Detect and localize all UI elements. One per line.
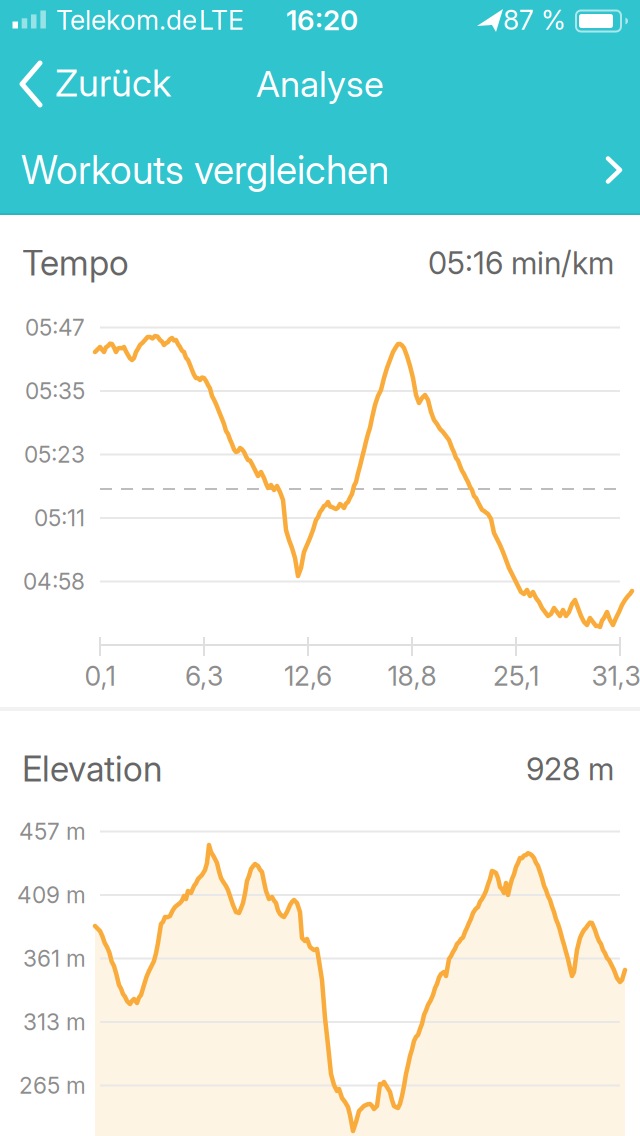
staticText: Analyse xyxy=(256,62,384,106)
staticText: 05:11 xyxy=(34,504,85,532)
staticText: 18,8 xyxy=(387,660,436,692)
staticText: 04:58 xyxy=(23,568,85,595)
staticText: 05:16 min/km xyxy=(428,244,614,281)
staticText: 361 m xyxy=(23,945,86,972)
staticText: Zurück xyxy=(55,60,171,106)
staticText: 25,1 xyxy=(493,660,539,692)
staticText: 16:20 xyxy=(286,3,358,37)
staticText: Tempo xyxy=(22,242,129,284)
button[interactable]: Workouts vergleichen xyxy=(0,126,640,214)
staticText: 05:35 xyxy=(25,377,85,405)
staticText: Elevation xyxy=(22,748,162,790)
staticText: 87 % xyxy=(503,4,566,36)
staticText: LTE xyxy=(199,4,244,36)
staticText: 12,6 xyxy=(284,660,332,692)
staticText: 05:47 xyxy=(25,314,85,341)
staticText: Telekom.de xyxy=(56,4,197,36)
staticText: 457 m xyxy=(19,818,86,845)
staticText: 409 m xyxy=(17,881,86,909)
staticText: 313 m xyxy=(23,1008,86,1036)
staticText: 31,3 xyxy=(591,660,640,692)
staticText: 6,3 xyxy=(185,660,223,692)
staticText: 265 m xyxy=(19,1072,86,1099)
button[interactable]: Zurück xyxy=(16,52,196,116)
staticText: Workouts vergleichen xyxy=(21,147,389,193)
staticText: 0,1 xyxy=(84,660,115,692)
staticText: 928 m xyxy=(526,750,614,787)
staticText: 05:23 xyxy=(24,441,85,468)
